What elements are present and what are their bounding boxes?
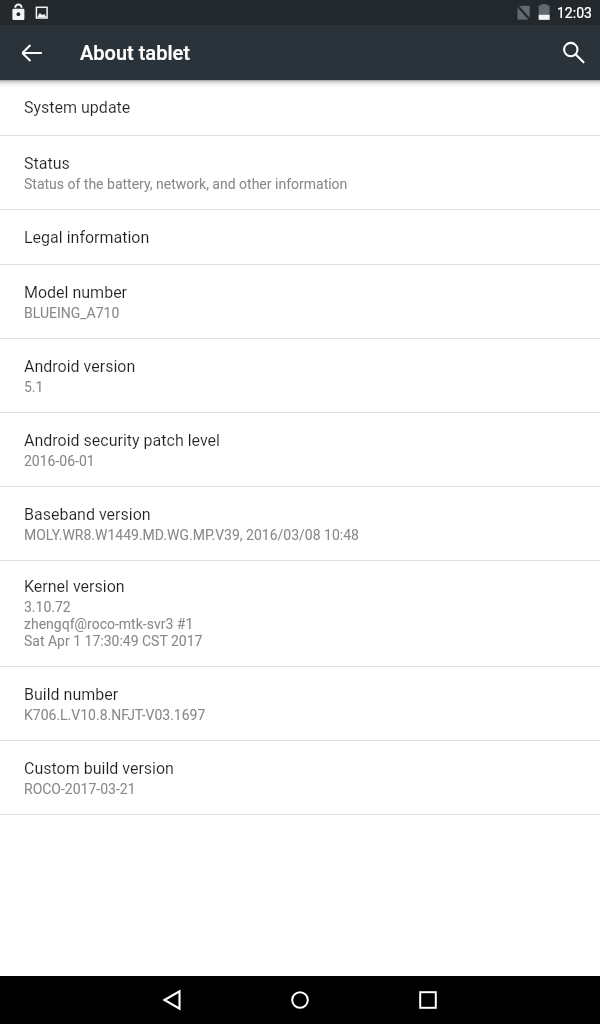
staticText: Kernel version bbox=[24, 577, 125, 596]
button[interactable]: Back bbox=[10, 31, 54, 75]
staticText: Android version bbox=[24, 357, 136, 376]
button[interactable]: Android version bbox=[0, 339, 600, 412]
staticText: ROCO-2017-03-21 bbox=[24, 781, 136, 797]
staticText: MOLY.WR8.W1449.MD.WG.MP.V39, 2016/03/08 … bbox=[24, 527, 359, 543]
staticText: K706.L.V10.8.NFJT-V03.1697 bbox=[24, 707, 206, 723]
button[interactable]: Custom build version bbox=[0, 741, 600, 814]
button[interactable]: Build number bbox=[0, 667, 600, 740]
staticText: Baseband version bbox=[24, 505, 151, 524]
button[interactable]: Status bbox=[0, 136, 600, 209]
staticText: System update bbox=[24, 98, 131, 117]
button[interactable]: Back bbox=[124, 976, 220, 1024]
staticText: Legal information bbox=[24, 228, 150, 247]
staticText: Android security patch level bbox=[24, 431, 220, 450]
button[interactable]: Recents bbox=[380, 976, 476, 1024]
staticText: Custom build version bbox=[24, 759, 174, 778]
staticText: About tablet bbox=[80, 41, 190, 64]
staticText: Status of the battery, network, and othe… bbox=[24, 176, 348, 192]
staticText: 5.1 bbox=[24, 379, 44, 395]
button[interactable]: Baseband version bbox=[0, 487, 600, 560]
button[interactable]: System update bbox=[0, 80, 600, 135]
staticText: 2016-06-01 bbox=[24, 453, 95, 469]
staticText: 12:03 bbox=[557, 5, 592, 21]
button[interactable]: Search bbox=[548, 31, 592, 75]
staticText: Model number bbox=[24, 283, 128, 302]
staticText: Status bbox=[24, 154, 70, 173]
staticText: 3.10.72 zhengqf@roco-mtk-svr3 #1 Sat Apr… bbox=[24, 599, 203, 650]
button[interactable]: Home bbox=[252, 976, 348, 1024]
staticText: BLUEING_A710 bbox=[24, 305, 120, 321]
staticText: Build number bbox=[24, 685, 119, 704]
button[interactable]: Kernel version bbox=[0, 561, 600, 666]
button[interactable]: Legal information bbox=[0, 210, 600, 264]
button[interactable]: Android security patch level bbox=[0, 413, 600, 486]
button[interactable]: Model number bbox=[0, 265, 600, 338]
